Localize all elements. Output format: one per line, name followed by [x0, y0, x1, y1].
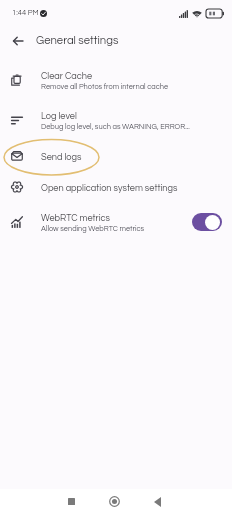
staticText: Log level: [41, 111, 77, 120]
staticText: Allow sending WebRTC metrics: [41, 225, 145, 233]
staticText: Debug log level, such as WARNING, ERROR.…: [41, 123, 190, 131]
staticText: Clear Cache: [41, 71, 93, 80]
button[interactable]: WebRTC metrics: [0, 202, 232, 242]
button[interactable]: Log level: [0, 100, 232, 140]
staticText: WebRTC metrics: [41, 213, 111, 222]
staticText: Remove all Photos from internal cache: [41, 83, 169, 91]
button[interactable]: Toggle WebRTC metrics: [192, 213, 222, 231]
staticText: Send logs: [41, 152, 82, 161]
staticText: General settings: [36, 35, 119, 47]
button[interactable]: Back: [4, 27, 32, 55]
button[interactable]: Home: [99, 488, 129, 515]
button[interactable]: Back: [142, 488, 172, 515]
button[interactable]: Recent apps: [56, 488, 86, 515]
button[interactable]: Open application system settings: [0, 171, 232, 202]
staticText: 1:44 PM: [12, 9, 39, 17]
button[interactable]: Send logs: [0, 140, 232, 171]
staticText: Open application system settings: [41, 183, 178, 192]
button[interactable]: Clear Cache: [0, 60, 232, 100]
